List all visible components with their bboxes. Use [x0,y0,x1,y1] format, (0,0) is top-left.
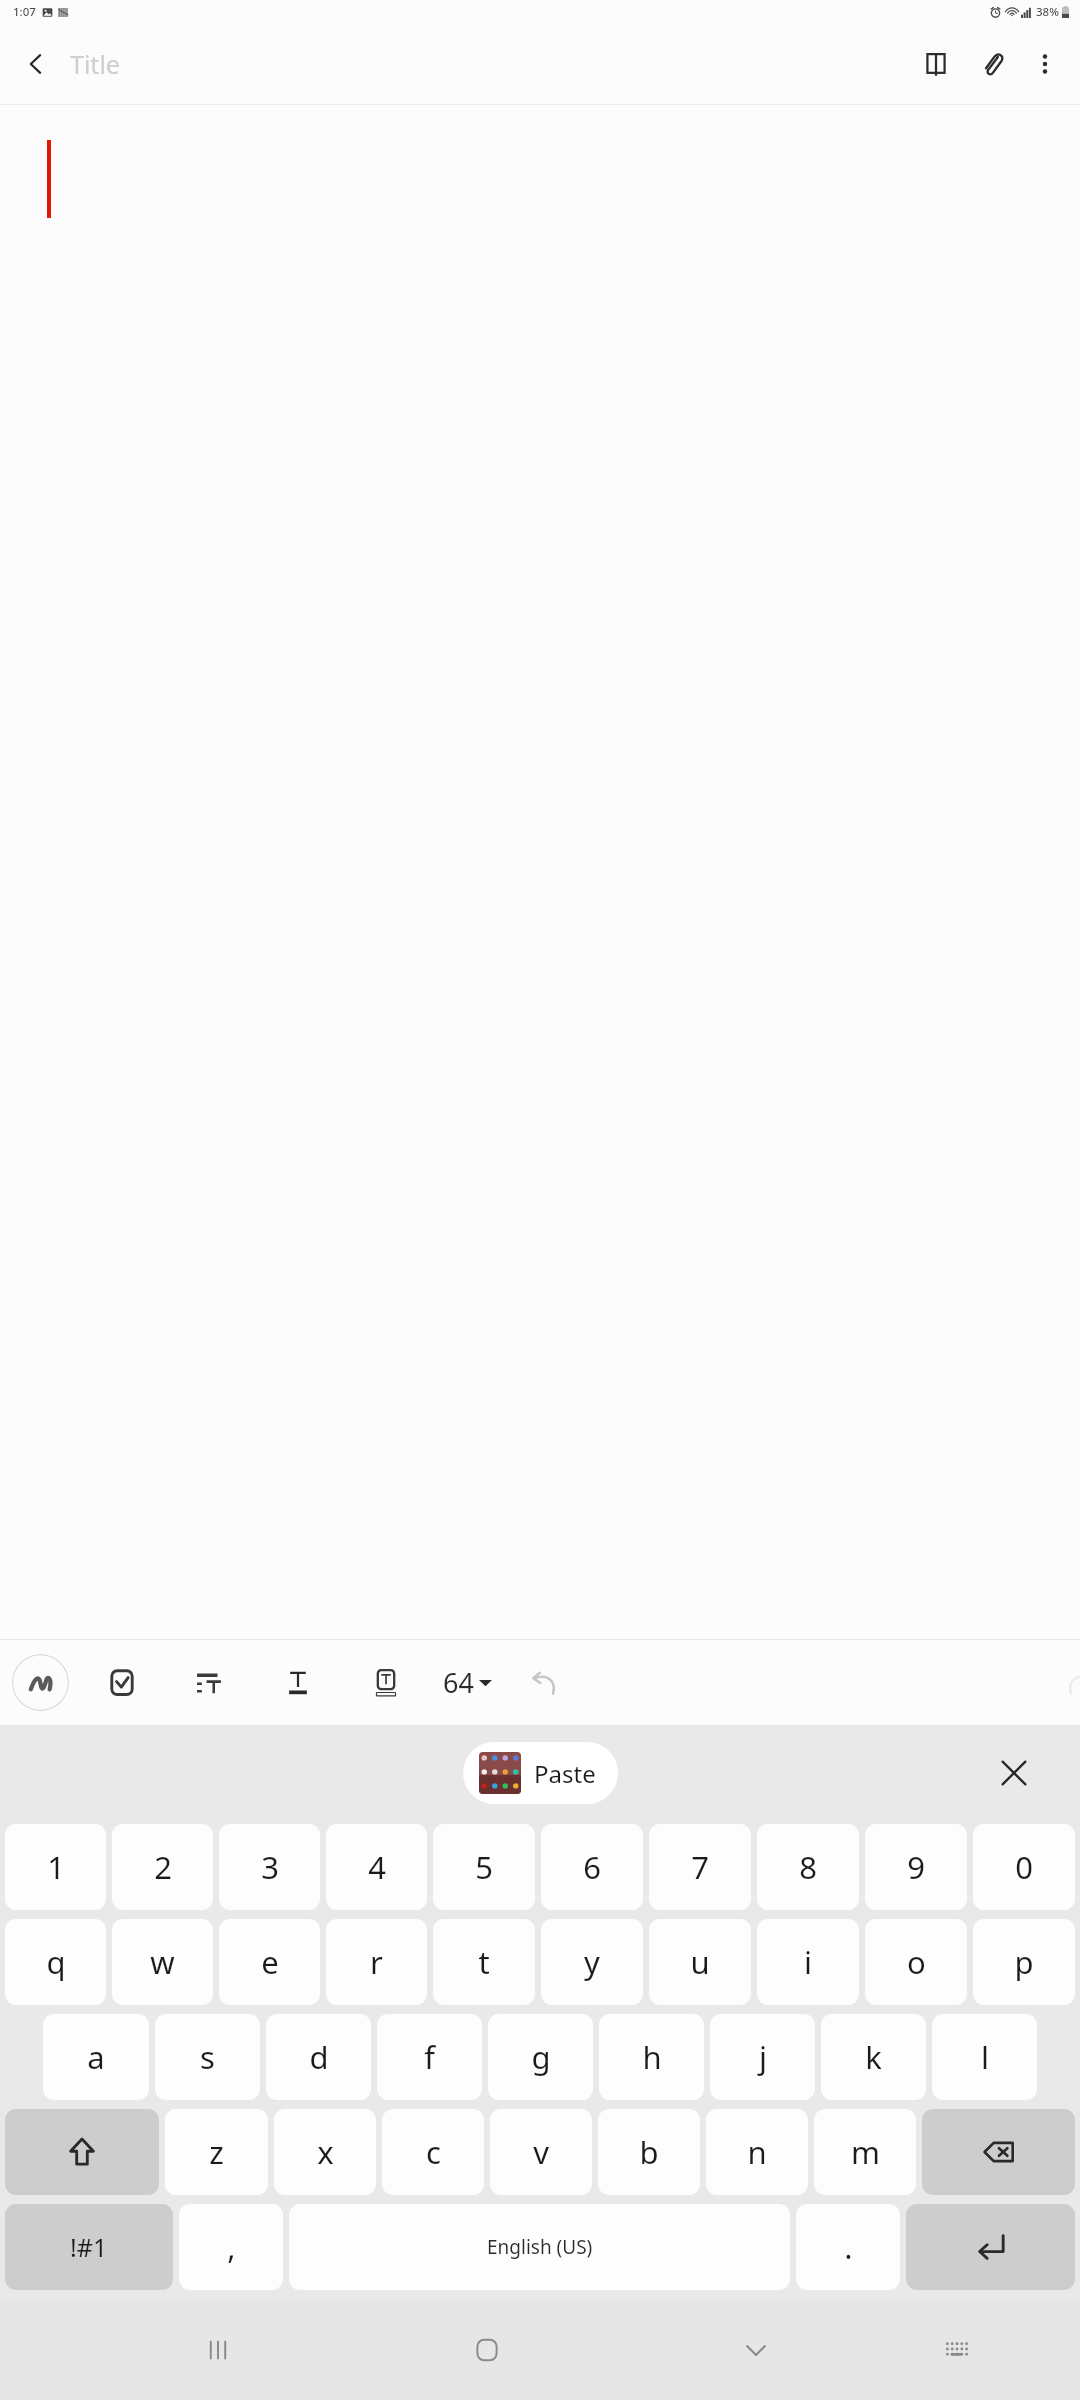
staticText: p [1014,1941,1034,1983]
button[interactable]: Shift [5,2109,159,2195]
staticText: z [209,2131,224,2173]
staticText: 0 [1015,1846,1033,1888]
button[interactable]: i [757,1919,859,2005]
button[interactable]: l [932,2014,1037,2100]
button[interactable]: 0 [973,1824,1075,1910]
staticText: 38% [1036,4,1059,20]
button[interactable]: Text background [359,1656,413,1710]
staticText: b [639,2131,659,2173]
button[interactable]: More options [1020,39,1070,89]
button[interactable]: Text style [271,1656,325,1710]
button[interactable]: j [710,2014,815,2100]
button[interactable]: Checklist [95,1656,149,1710]
staticText: e [261,1941,279,1983]
button[interactable]: y [541,1919,643,2005]
button[interactable]: . [796,2204,900,2290]
staticText: 4 [368,1846,386,1888]
button[interactable]: Undo [518,1657,570,1709]
button[interactable]: 5 [433,1824,535,1910]
button[interactable]: Reading view [908,36,964,92]
staticText: Title [70,47,120,81]
button[interactable]: x [274,2109,376,2195]
button[interactable]: b [598,2109,700,2195]
staticText: t [478,1941,490,1983]
button[interactable]: e [219,1919,320,2005]
button[interactable]: h [599,2014,704,2100]
button[interactable]: Backspace [922,2109,1075,2195]
staticText: s [200,2036,215,2078]
button[interactable]: 8 [757,1824,859,1910]
staticText: a [87,2036,105,2078]
staticText: y [584,1941,600,1983]
button[interactable]: Paste [463,1742,618,1804]
button[interactable]: w [112,1919,213,2005]
button[interactable]: 2 [112,1824,213,1910]
staticText: h [642,2036,662,2078]
button[interactable]: 4 [326,1824,427,1910]
button[interactable]: Recent apps [182,2314,254,2386]
button[interactable]: Home [451,2314,523,2386]
button[interactable]: !#1 [5,2204,173,2290]
staticText: g [531,2036,551,2078]
button[interactable]: p [973,1919,1075,2005]
staticText: 1 [47,1846,65,1888]
button[interactable]: 1 [5,1824,106,1910]
button[interactable]: t [433,1919,535,2005]
button[interactable]: c [382,2109,484,2195]
staticText: 3 [261,1846,279,1888]
button[interactable]: Enter [906,2204,1075,2290]
button[interactable]: Hide keyboard [720,2314,792,2386]
button[interactable]: a [43,2014,149,2100]
button[interactable]: Attach [964,36,1020,92]
button[interactable]: k [821,2014,926,2100]
button[interactable]: Paragraph style [183,1656,237,1710]
button[interactable]: g [488,2014,593,2100]
button[interactable]: m [814,2109,916,2195]
button[interactable]: 9 [865,1824,967,1910]
button[interactable]: English (US) [289,2204,790,2290]
staticText: 64 [443,1664,474,1701]
staticText: l [981,2036,989,2078]
staticText: 8 [799,1846,817,1888]
staticText: m [851,2131,880,2173]
staticText: o [907,1941,926,1983]
staticText: English (US) [487,2234,593,2260]
button[interactable]: Back [8,36,64,92]
staticText: u [690,1941,710,1983]
staticText: 6 [583,1846,601,1888]
button[interactable]: r [326,1919,427,2005]
staticText: c [426,2131,441,2173]
staticText: 7 [691,1846,709,1888]
staticText: w [150,1941,175,1983]
button[interactable]: n [706,2109,808,2195]
button[interactable]: d [266,2014,371,2100]
button[interactable]: 64 [439,1654,496,1711]
staticText: d [309,2036,329,2078]
staticText: r [370,1941,383,1983]
button[interactable]: o [865,1919,967,2005]
button[interactable]: u [649,1919,751,2005]
button[interactable]: Change keyboard [924,2317,990,2383]
staticText: q [46,1941,66,1983]
button[interactable]: , [179,2204,283,2290]
staticText: 9 [907,1846,925,1888]
staticText: , [227,2226,236,2268]
staticText: n [747,2131,767,2173]
button[interactable]: f [377,2014,482,2100]
staticText: x [317,2131,334,2173]
staticText: f [424,2036,435,2078]
staticText: i [804,1941,812,1983]
button[interactable]: v [490,2109,592,2195]
staticText: . [844,2226,853,2268]
button[interactable]: 3 [219,1824,320,1910]
button[interactable]: z [165,2109,268,2195]
button[interactable]: Handwriting [12,1654,69,1711]
staticText: 1:07 [13,4,36,20]
button[interactable]: q [5,1919,106,2005]
button[interactable]: s [155,2014,260,2100]
button[interactable]: Close [986,1745,1042,1801]
button[interactable]: 6 [541,1824,643,1910]
button[interactable]: 7 [649,1824,751,1910]
staticText: v [533,2131,549,2173]
